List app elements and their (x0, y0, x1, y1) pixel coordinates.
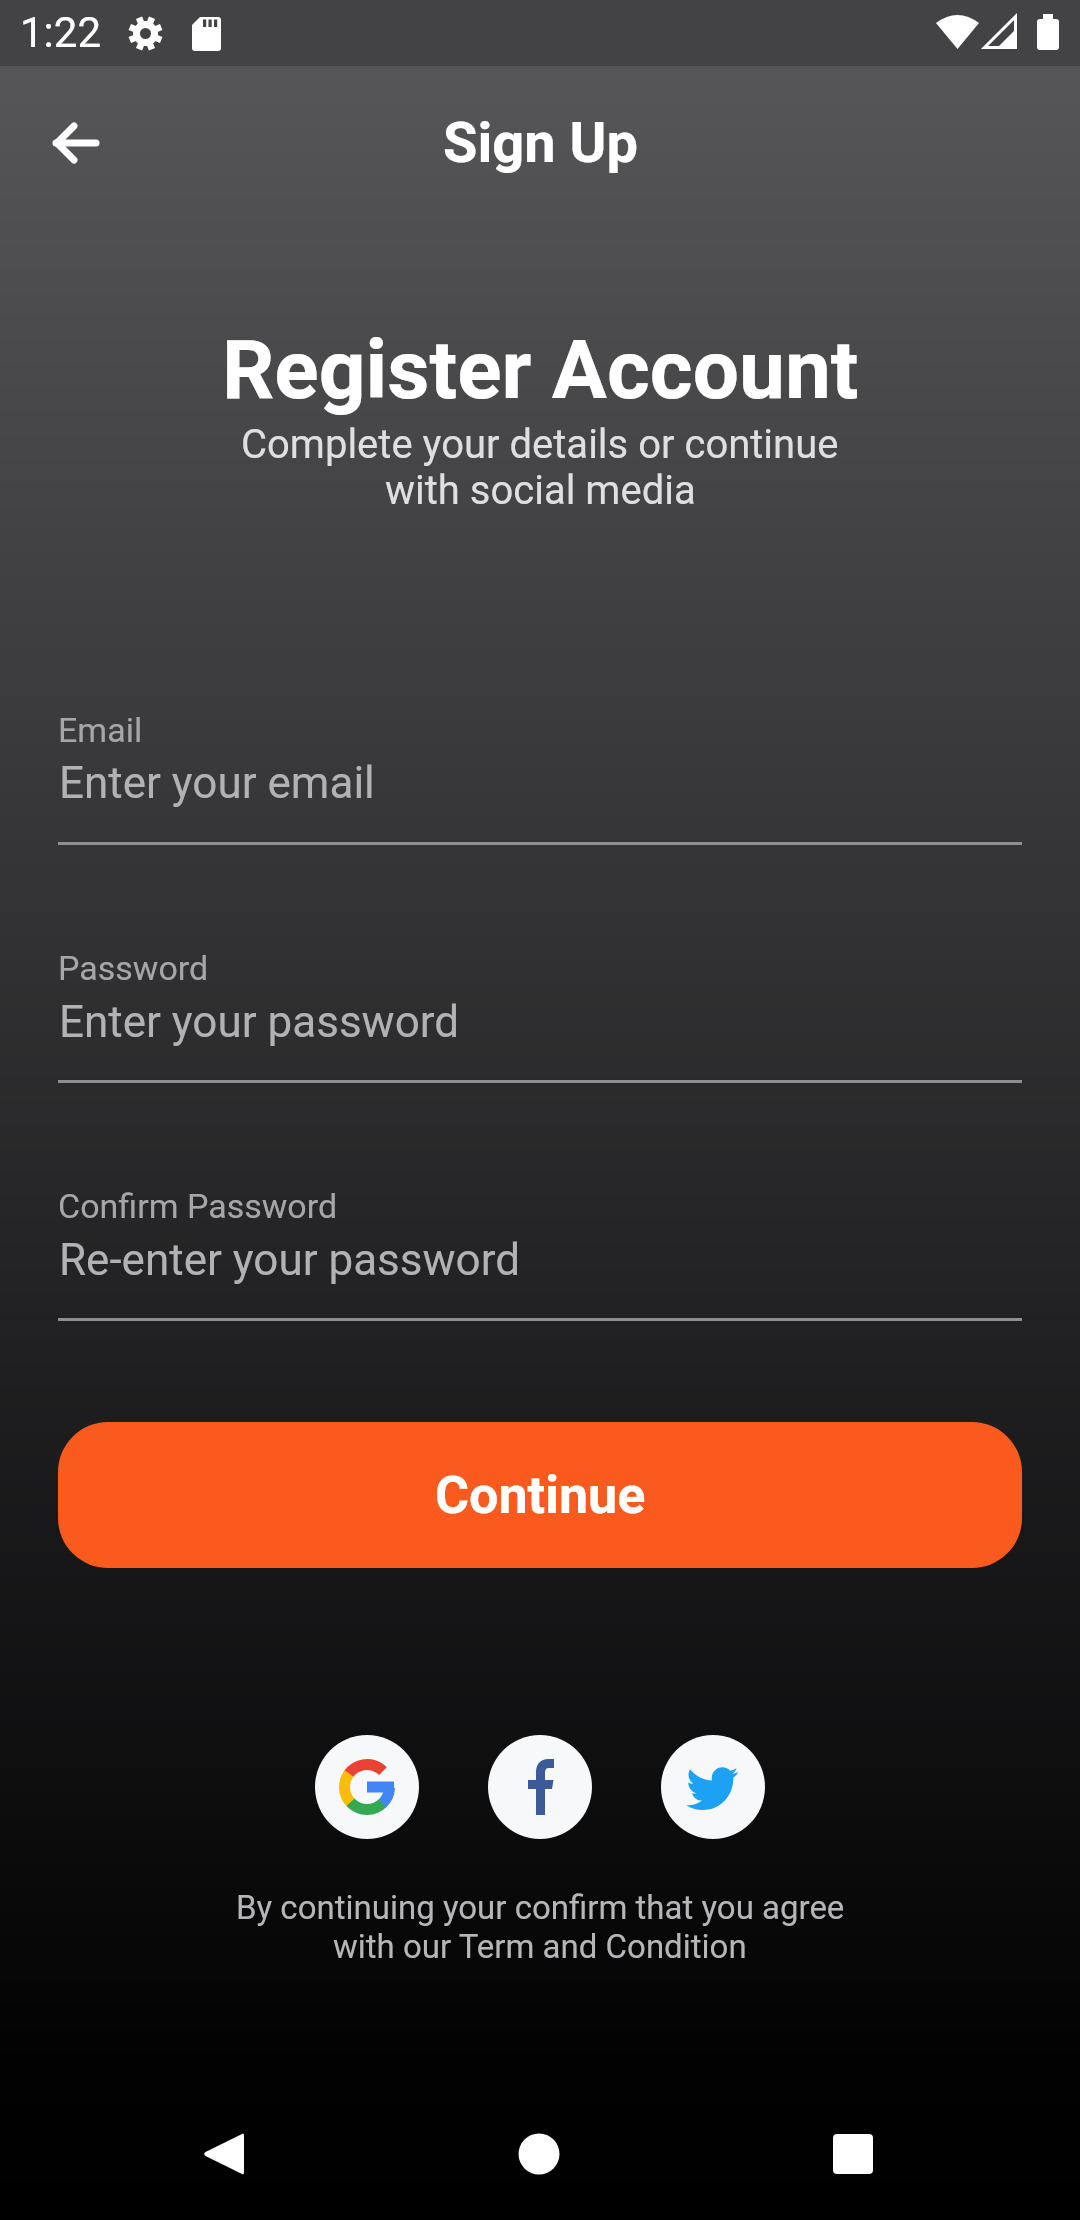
button[interactable]: Enter your password (58, 996, 1022, 1083)
staticText: By continuing your confirm that you agre… (236, 1888, 845, 1927)
staticText: Continue (435, 1465, 646, 1526)
button[interactable] (315, 1735, 419, 1839)
staticText: Re-enter your password (59, 1234, 520, 1286)
staticText: with social media (385, 467, 696, 514)
staticText: with our Term and Condition (333, 1927, 747, 1966)
button[interactable] (661, 1735, 765, 1839)
button[interactable] (488, 1735, 592, 1839)
staticText: Register Account (222, 322, 859, 418)
button[interactable] (46, 113, 106, 173)
button[interactable]: Enter your email (58, 757, 1022, 845)
button[interactable] (508, 2123, 570, 2185)
staticText: Enter your password (59, 996, 460, 1048)
staticText: 1:22 (20, 8, 101, 57)
staticText: Password (58, 948, 209, 988)
button[interactable]: Continue (58, 1422, 1022, 1568)
staticText: Enter your email (59, 757, 375, 809)
staticText: Sign Up (443, 110, 638, 176)
staticText: Confirm Password (58, 1186, 338, 1226)
button[interactable] (192, 2123, 254, 2185)
button[interactable]: Re-enter your password (58, 1234, 1022, 1321)
staticText: Email (58, 710, 143, 750)
button[interactable] (822, 2123, 884, 2185)
staticText: Complete your details or continue (241, 421, 839, 468)
